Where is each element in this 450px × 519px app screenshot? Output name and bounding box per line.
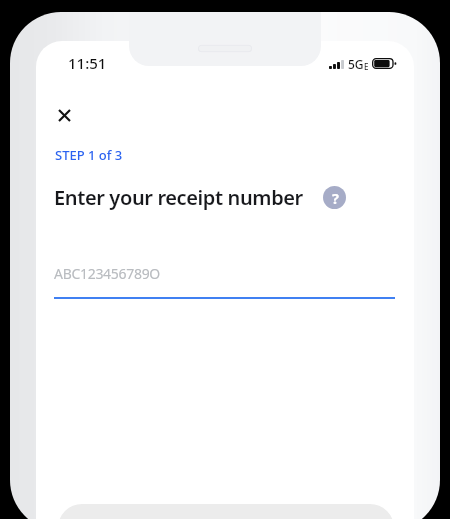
button[interactable]: Continue <box>58 504 394 519</box>
button[interactable]: Receipt number <box>54 255 395 299</box>
staticText: E <box>364 61 369 72</box>
staticText: 5G <box>348 56 364 72</box>
button[interactable]: Close <box>41 92 88 139</box>
staticText: 11:51 <box>68 53 107 73</box>
staticText: Enter your receipt number <box>54 184 303 211</box>
staticText: STEP 1 of 3 <box>55 146 123 164</box>
staticText: ? <box>332 188 339 208</box>
button[interactable]: STEP 1 of 3 <box>55 144 123 166</box>
staticText: ABC123456789O <box>54 264 160 283</box>
button[interactable]: Help <box>323 186 346 209</box>
